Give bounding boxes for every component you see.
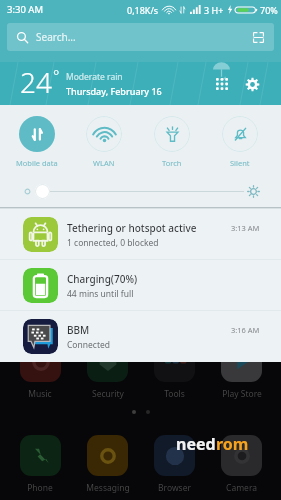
button[interactable]: Music	[6, 341, 74, 400]
button[interactable]: Security	[74, 341, 141, 400]
staticText: °	[53, 65, 60, 85]
staticText: 1 connected, 0 blocked	[67, 237, 159, 249]
staticText: Play Store	[222, 388, 262, 400]
button[interactable]: BBM	[0, 311, 281, 362]
button[interactable]: Apps	[209, 71, 235, 97]
staticText: Music	[28, 388, 52, 400]
staticText: Search...	[36, 30, 76, 44]
button[interactable]: Silent	[206, 116, 274, 168]
staticText: 70%	[260, 4, 278, 16]
staticText: 3:16 AM	[231, 325, 260, 335]
staticText: Phone	[27, 482, 53, 494]
staticText: Connected	[67, 339, 110, 351]
button[interactable]: Tethering or hotspot active	[0, 209, 281, 260]
other: Scan	[252, 31, 265, 44]
staticText: Messaging	[86, 482, 130, 494]
staticText: 3 H+	[204, 4, 224, 16]
button[interactable]: Tools	[141, 341, 208, 400]
button[interactable]: Phone	[6, 435, 74, 494]
staticText: Charging(70%)	[67, 272, 138, 286]
button[interactable]: Camera	[208, 435, 275, 494]
button[interactable]: Settings	[239, 71, 265, 97]
staticText: Browser	[158, 482, 191, 494]
button[interactable]: Charging(70%)	[0, 260, 281, 311]
staticText: BBM	[67, 323, 90, 337]
staticText: 44 mins until full	[67, 288, 134, 300]
staticText: need	[176, 433, 216, 455]
button[interactable]: Play Store	[208, 341, 275, 400]
staticText: 3:13 AM	[231, 223, 260, 233]
button[interactable]: Search...	[7, 23, 274, 51]
button[interactable]: Mobile data	[3, 116, 70, 168]
staticText: Moderate rain	[66, 71, 123, 83]
staticText: Mobile data	[16, 158, 58, 168]
staticText: Tools	[164, 388, 185, 400]
staticText: 3:30 AM	[7, 3, 44, 16]
button[interactable]: WLAN	[70, 116, 138, 168]
button[interactable]: Messaging	[74, 435, 141, 494]
staticText: Tethering or hotspot active	[67, 221, 197, 235]
staticText: Torch	[162, 158, 182, 168]
staticText: 0,18K/s	[127, 4, 159, 16]
button[interactable]	[35, 183, 244, 199]
staticText: 24	[20, 63, 52, 101]
staticText: Thursday, February 16	[66, 85, 162, 97]
staticText: rom	[216, 433, 249, 455]
staticText: Silent	[230, 158, 250, 168]
staticText: WLAN	[93, 158, 115, 168]
staticText: Security	[92, 388, 124, 400]
button[interactable]: Torch	[138, 116, 206, 168]
staticText: Camera	[226, 482, 257, 494]
button[interactable]: Browser	[141, 435, 208, 494]
